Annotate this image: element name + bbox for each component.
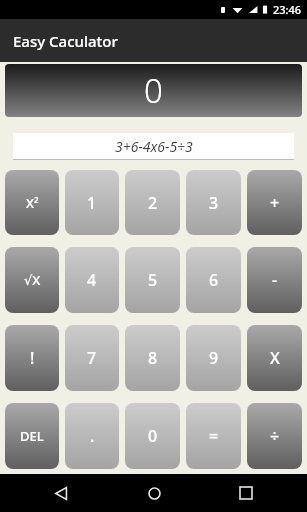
button[interactable]: DEL — [5, 403, 59, 469]
staticText: + — [270, 192, 280, 214]
button[interactable]: Back — [46, 478, 76, 508]
button[interactable]: 5 — [125, 247, 180, 313]
staticText: 9 — [209, 347, 219, 369]
button[interactable]: + — [247, 170, 302, 235]
button[interactable]: 3+6-4x6-5÷3 — [13, 133, 294, 159]
staticText: = — [209, 425, 219, 447]
staticText: 3 — [209, 192, 219, 214]
button[interactable]: X — [247, 325, 302, 391]
staticText: 0 — [144, 68, 163, 113]
button[interactable]: √X — [5, 247, 59, 313]
button[interactable]: ! — [5, 325, 59, 391]
staticText: X² — [26, 194, 39, 212]
staticText: 4 — [87, 269, 97, 291]
button[interactable]: 1 — [65, 170, 119, 235]
staticText: 7 — [87, 347, 97, 369]
staticText: X — [270, 347, 280, 369]
staticText: ÷ — [270, 425, 280, 447]
staticText: √X — [24, 271, 41, 289]
button[interactable]: 0 — [125, 403, 180, 469]
button[interactable]: 9 — [186, 325, 241, 391]
staticText: 0 — [148, 425, 158, 447]
staticText: 1 — [87, 192, 97, 214]
staticText: 3+6-4x6-5÷3 — [115, 137, 193, 156]
button[interactable]: 0 — [5, 64, 302, 117]
button[interactable]: 3 — [186, 170, 241, 235]
staticText: ! — [30, 347, 35, 369]
button[interactable]: = — [186, 403, 241, 469]
staticText: 2 — [148, 192, 158, 214]
staticText: 5 — [148, 269, 158, 291]
button[interactable]: ÷ — [247, 403, 302, 469]
button[interactable]: 8 — [125, 325, 180, 391]
staticText: 23:46 — [273, 2, 302, 17]
button[interactable]: Recents — [231, 478, 261, 508]
staticText: . — [90, 425, 95, 447]
button[interactable]: . — [65, 403, 119, 469]
button[interactable]: X² — [5, 170, 59, 235]
staticText: DEL — [20, 427, 44, 445]
button[interactable]: 2 — [125, 170, 180, 235]
button[interactable]: - — [247, 247, 302, 313]
button[interactable]: 4 — [65, 247, 119, 313]
button[interactable]: 7 — [65, 325, 119, 391]
button[interactable]: Home — [139, 478, 169, 508]
staticText: 6 — [209, 269, 219, 291]
button[interactable]: 6 — [186, 247, 241, 313]
staticText: 8 — [148, 347, 158, 369]
staticText: Easy Caculator — [13, 31, 118, 51]
staticText: - — [272, 269, 278, 291]
